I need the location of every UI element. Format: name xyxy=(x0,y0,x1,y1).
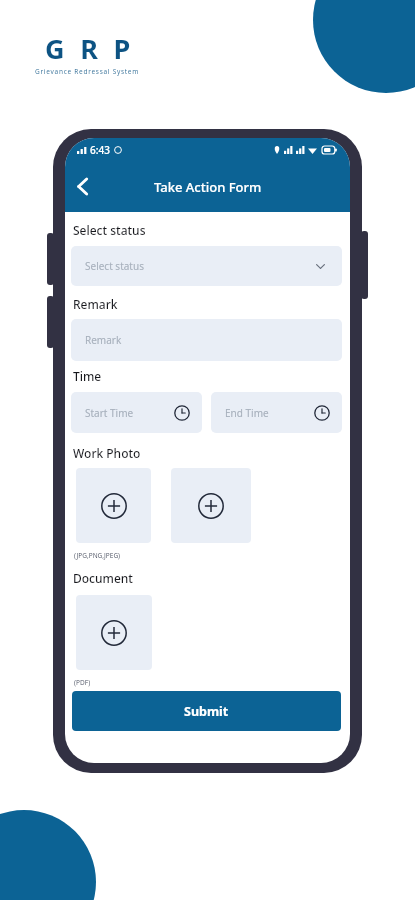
staticText: Remark xyxy=(85,333,122,347)
button[interactable]: Add xyxy=(76,595,152,670)
staticText: Time xyxy=(73,368,102,384)
staticText: 6:43 xyxy=(90,143,110,157)
staticText: (PDF) xyxy=(74,678,91,687)
button[interactable]: Start Time xyxy=(71,392,202,433)
staticText: Select status xyxy=(73,222,146,238)
button[interactable]: Add xyxy=(76,468,151,543)
button[interactable]: End Time xyxy=(211,392,342,433)
button[interactable]: Add xyxy=(171,468,251,543)
staticText: Grievance Redressal System xyxy=(35,67,140,76)
staticText: Work Photo xyxy=(73,445,141,461)
staticText: Submit xyxy=(184,703,229,720)
button[interactable]: Select status xyxy=(71,246,342,286)
staticText: Select status xyxy=(85,259,144,273)
button[interactable]: Remark xyxy=(71,319,342,361)
staticText: Take Action Form xyxy=(154,178,262,196)
button[interactable]: Submit xyxy=(72,691,341,731)
staticText: Remark xyxy=(73,296,118,312)
button[interactable]: Back xyxy=(70,169,94,203)
staticText: (JPG,PNG,JPEG) xyxy=(74,551,121,560)
staticText: End Time xyxy=(225,406,269,420)
staticText: Start Time xyxy=(85,406,134,420)
staticText: G R P xyxy=(45,30,135,67)
staticText: Document xyxy=(73,570,133,586)
